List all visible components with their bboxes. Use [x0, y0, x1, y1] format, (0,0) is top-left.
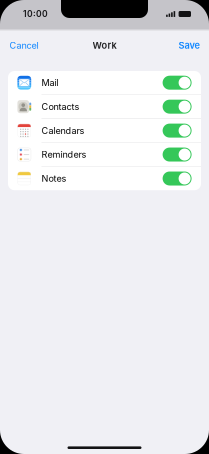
staticText: Cancel: [9, 40, 38, 51]
staticText: 10:00: [23, 9, 48, 19]
button[interactable]: Cancel: [0, 35, 48, 56]
staticText: Notes: [41, 173, 66, 184]
button[interactable]: Notes: [8, 167, 201, 190]
staticText: Save: [178, 40, 199, 51]
staticText: Mail: [41, 77, 58, 88]
button[interactable]: Reminders: [8, 143, 201, 166]
staticText: Calendars: [41, 125, 84, 136]
button[interactable]: Save: [169, 35, 209, 56]
staticText: Reminders: [41, 149, 86, 160]
button[interactable]: Calendars: [8, 119, 201, 142]
button[interactable]: Mail: [8, 71, 201, 94]
staticText: Work: [92, 40, 116, 51]
button[interactable]: Contacts: [8, 95, 201, 118]
staticText: Contacts: [41, 101, 79, 112]
